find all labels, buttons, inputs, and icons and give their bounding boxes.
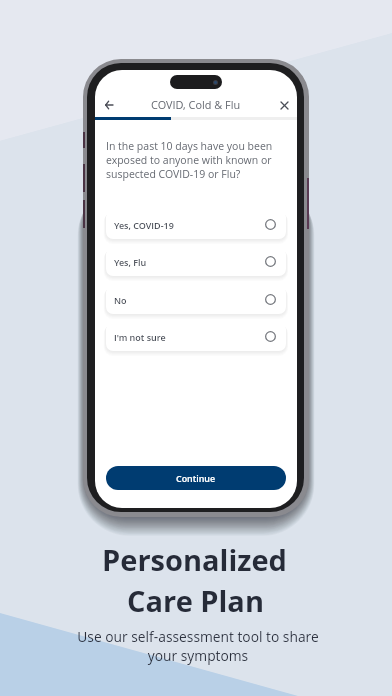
staticText: In the past 10 days have you been expose… xyxy=(106,139,278,181)
staticText: No xyxy=(114,294,127,306)
staticText: Yes, COVID-19 xyxy=(114,219,174,231)
staticText: Continue xyxy=(176,472,216,484)
button[interactable]: I'm not sure xyxy=(106,322,286,351)
staticText: Yes, Flu xyxy=(114,256,147,268)
button[interactable]: Close xyxy=(273,94,295,116)
staticText: COVID, Cold & Flu xyxy=(151,97,241,112)
staticText: Care Plan xyxy=(127,581,264,620)
button[interactable]: Yes, Flu xyxy=(106,247,286,276)
staticText: I'm not sure xyxy=(114,331,166,343)
button[interactable]: Yes, COVID-19 xyxy=(106,210,286,239)
staticText: Use our self-assessment tool to share yo… xyxy=(77,627,319,665)
button[interactable]: Back xyxy=(98,94,120,116)
staticText: Personalized xyxy=(102,540,287,579)
button[interactable]: Continue xyxy=(106,466,286,490)
button[interactable]: No xyxy=(106,285,286,314)
